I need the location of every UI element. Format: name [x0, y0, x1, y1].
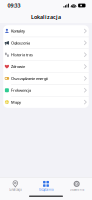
staticText: Historia tras	[11, 52, 33, 57]
staticText: Zdrowie	[11, 64, 25, 69]
staticText: Frekwencja	[11, 88, 31, 93]
button[interactable]: Lokalizacja	[0, 179, 31, 192]
staticText: Ogłoszenia	[11, 40, 30, 45]
staticText: Urządzenia	[39, 188, 53, 191]
staticText: 09:33	[7, 2, 20, 9]
button[interactable]: Zdrowie	[3, 61, 89, 72]
button[interactable]: Oszczędzanie energii	[3, 73, 89, 84]
staticText: Mapy	[11, 99, 21, 105]
staticText: Lokalizacja	[9, 188, 21, 191]
button[interactable]: Kontakty	[3, 25, 89, 37]
staticText: Ustawienia	[70, 188, 84, 191]
staticText: Kontakty	[11, 28, 25, 34]
button[interactable]: Ustawienia	[61, 179, 92, 192]
button[interactable]: Ogłoszenia	[3, 37, 89, 49]
button[interactable]: Mapy	[3, 96, 89, 108]
staticText: Oszczędzanie energii	[11, 76, 48, 81]
button[interactable]: Historia tras	[3, 49, 89, 60]
button[interactable]: Frekwencja	[3, 84, 89, 96]
staticText: Lokalizacja	[31, 13, 61, 21]
button[interactable]: Urządzenia	[31, 179, 61, 192]
